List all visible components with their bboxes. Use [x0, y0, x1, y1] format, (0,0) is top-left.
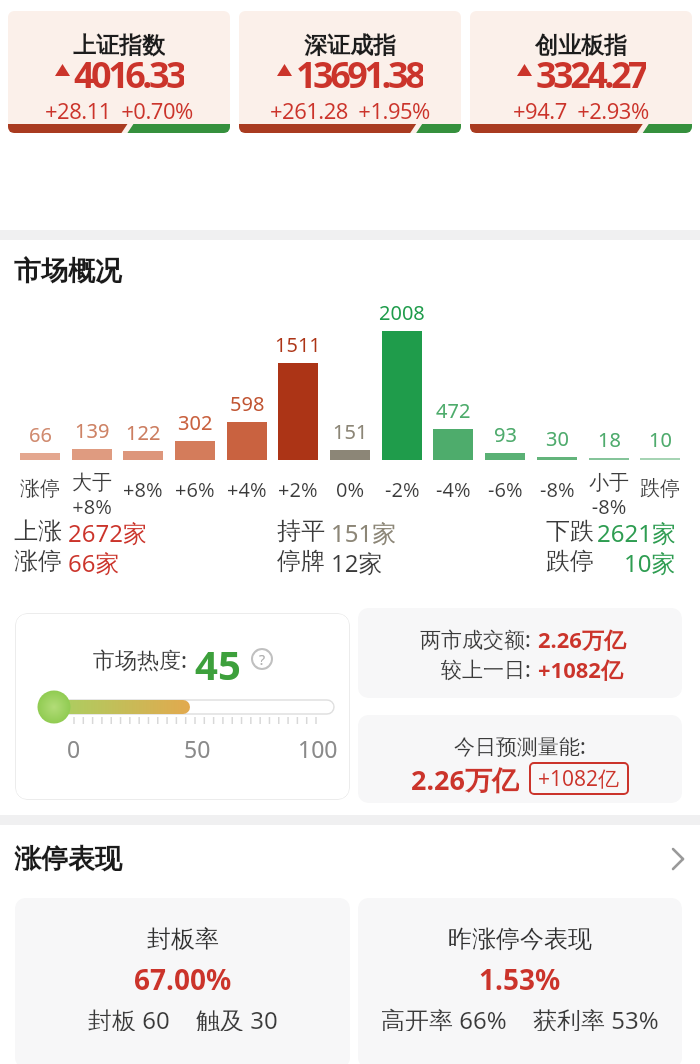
staticText: +1082亿 — [538, 764, 620, 793]
staticText: 12家 — [331, 546, 383, 579]
button[interactable]: 创业板指 — [470, 11, 692, 133]
staticText: ? — [259, 650, 266, 669]
staticText: 创业板指 — [535, 31, 627, 59]
staticText: 18 — [598, 426, 621, 453]
staticText: 67.00% — [134, 960, 232, 994]
button[interactable]: 深证成指 — [239, 11, 461, 133]
staticText: 封板率 — [147, 924, 219, 952]
staticText: 598 — [230, 390, 265, 417]
staticText: 45 — [195, 637, 241, 681]
staticText: 停牌 — [277, 546, 325, 576]
staticText: 涨停表现 — [14, 842, 122, 876]
staticText: 472 — [436, 397, 471, 424]
staticText: 3324.27 — [536, 50, 646, 90]
button[interactable]: 封板率 — [15, 898, 350, 1064]
staticText: 66家 — [68, 546, 120, 579]
button[interactable]: 今日预测量能: — [358, 715, 682, 803]
button[interactable]: 两市成交额: — [358, 608, 682, 698]
staticText: 下跌 — [546, 516, 594, 546]
button[interactable]: 市场热度: — [15, 613, 350, 800]
staticText: 122 — [126, 419, 161, 446]
staticText: 13691.38 — [296, 50, 423, 90]
staticText: 今日预测量能: — [454, 732, 586, 761]
staticText: 深证成指 — [304, 31, 396, 59]
staticText: 2621家 — [597, 516, 676, 549]
staticText: +4% — [227, 476, 267, 503]
staticText: 昨涨停今表现 — [448, 924, 592, 952]
staticText: 市场热度: — [93, 644, 187, 674]
staticText: 2008 — [379, 299, 425, 326]
staticText: +2% — [278, 476, 318, 503]
staticText: +94.7 +2.93% — [513, 95, 649, 123]
staticText: +6% — [175, 476, 215, 503]
staticText: 50 — [184, 733, 211, 761]
staticText: 涨停 — [14, 546, 62, 576]
staticText: +8% — [123, 476, 163, 503]
staticText: 大于 +8% — [72, 470, 112, 520]
staticText: 高开率 66% — [381, 1003, 507, 1031]
button[interactable]: 上证指数 — [8, 11, 230, 133]
staticText: 2.26万亿 — [538, 624, 626, 654]
staticText: 两市成交额: — [420, 625, 531, 654]
staticText: 0 — [67, 733, 81, 761]
staticText: 小于 -8% — [589, 470, 629, 520]
staticText: 151 — [333, 418, 368, 445]
staticText: 上证指数 — [73, 31, 165, 59]
staticText: +1082亿 — [538, 654, 623, 684]
staticText: 4016.33 — [74, 50, 184, 90]
staticText: +28.11 +0.70% — [45, 95, 193, 123]
staticText: 1511 — [275, 331, 321, 358]
staticText: 涨停 — [20, 476, 60, 501]
staticText: 跌停 — [546, 546, 594, 576]
staticText: 封板 60 — [88, 1003, 170, 1031]
staticText: 151家 — [331, 516, 397, 549]
staticText: 30 — [546, 425, 569, 452]
staticText: -6% — [488, 476, 523, 503]
staticText: 持平 — [277, 516, 325, 546]
staticText: 10家 — [624, 546, 676, 579]
button[interactable]: 昨涨停今表现 — [358, 898, 682, 1064]
staticText: +261.28 +1.95% — [270, 95, 430, 123]
staticText: 2.26万亿 — [411, 761, 519, 795]
staticText: 302 — [178, 409, 213, 436]
staticText: 触及 30 — [196, 1003, 278, 1031]
staticText: -8% — [540, 476, 575, 503]
staticText: 跌停 — [640, 476, 680, 501]
staticText: 较上一日: — [441, 655, 531, 684]
staticText: 66 — [29, 421, 52, 448]
staticText: 100 — [298, 733, 338, 761]
staticText: -4% — [436, 476, 471, 503]
staticText: 10 — [649, 426, 672, 453]
staticText: -2% — [385, 476, 420, 503]
staticText: 93 — [494, 421, 517, 448]
staticText: 上涨 — [14, 516, 62, 546]
button[interactable]: 涨停表现 — [14, 842, 686, 876]
staticText: 2672家 — [68, 516, 147, 549]
staticText: 0% — [336, 476, 365, 503]
staticText: 市场概况 — [14, 254, 122, 288]
staticText: 获利率 53% — [533, 1003, 659, 1031]
staticText: 1.53% — [479, 960, 561, 994]
staticText: 139 — [75, 417, 110, 444]
